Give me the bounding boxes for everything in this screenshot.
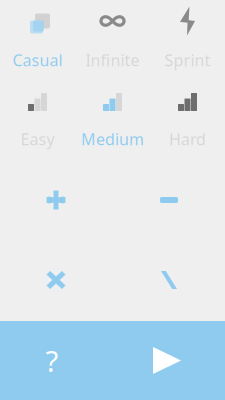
staticText: Medium: [81, 128, 144, 150]
staticText: Easy: [20, 128, 54, 150]
button[interactable]: Easy: [0, 90, 75, 147]
staticText: ?: [45, 341, 58, 380]
button[interactable]: Division: [113, 240, 225, 320]
button[interactable]: Infinite: [75, 5, 150, 68]
button[interactable]: Hard: [150, 90, 225, 147]
staticText: Sprint: [164, 49, 210, 71]
staticText: Hard: [169, 128, 206, 150]
button[interactable]: Addition: [0, 160, 112, 240]
button[interactable]: Multiplication: [0, 240, 112, 320]
button[interactable]: Start: [115, 321, 219, 400]
button[interactable]: Sprint: [150, 5, 225, 68]
staticText: Infinite: [85, 49, 139, 71]
button[interactable]: Subtraction: [113, 160, 225, 240]
staticText: Casual: [12, 49, 62, 71]
button[interactable]: Medium: [75, 90, 150, 147]
button[interactable]: Help: [0, 321, 104, 400]
button[interactable]: Casual: [0, 5, 75, 68]
